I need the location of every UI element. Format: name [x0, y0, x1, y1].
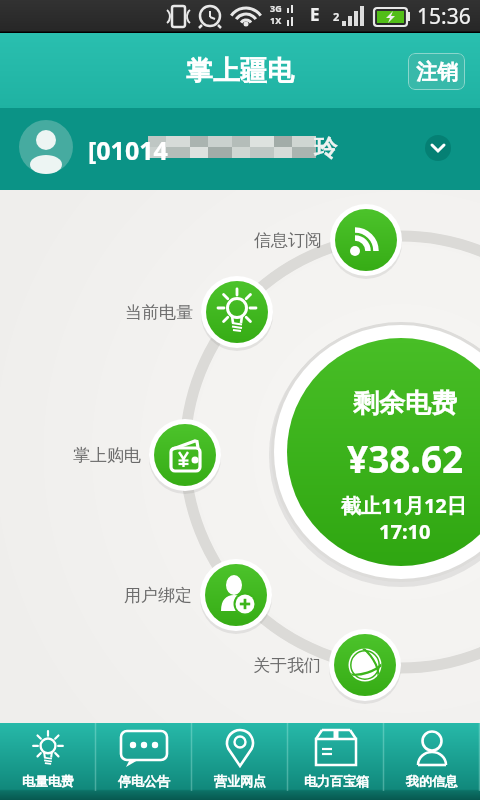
staticText: 电力百宝箱: [304, 773, 369, 789]
staticText: 关于我们: [253, 655, 321, 676]
staticText: 掌上疆电: [186, 54, 294, 88]
button[interactable]: [01014: [0, 108, 480, 190]
button[interactable]: 注销: [408, 53, 465, 90]
button[interactable]: [200, 275, 274, 349]
staticText: 用户绑定: [124, 585, 192, 606]
staticText: 电量电费: [22, 773, 74, 789]
staticText: 截止11月12日: [341, 492, 467, 519]
staticText: 当前电量: [125, 302, 193, 323]
button[interactable]: 我的信息: [384, 723, 480, 791]
staticText: 停电公告: [118, 773, 170, 789]
staticText: 掌上购电: [73, 445, 141, 466]
staticText: 注销: [416, 59, 458, 85]
staticText: 3G: [270, 2, 282, 14]
staticText: 玲: [314, 134, 337, 163]
staticText: ¥38.62: [347, 433, 464, 483]
staticText: 营业网点: [214, 773, 266, 789]
staticText: 1X: [270, 14, 282, 26]
staticText: 15:36: [417, 2, 471, 31]
button[interactable]: [148, 418, 222, 492]
button[interactable]: 电量电费: [0, 723, 96, 791]
staticText: 2: [333, 9, 340, 24]
staticText: 信息订阅: [254, 230, 322, 251]
button[interactable]: [328, 628, 402, 702]
button[interactable]: [199, 558, 273, 632]
button[interactable]: 营业网点: [192, 723, 288, 791]
button[interactable]: [329, 203, 403, 277]
staticText: 我的信息: [406, 773, 458, 789]
staticText: E: [310, 3, 320, 26]
staticText: 剩余电费: [353, 387, 457, 420]
button[interactable]: 停电公告: [96, 723, 192, 791]
button[interactable]: 电力百宝箱: [288, 723, 384, 791]
staticText: [01014: [88, 133, 168, 167]
staticText: 17:10: [379, 518, 431, 545]
